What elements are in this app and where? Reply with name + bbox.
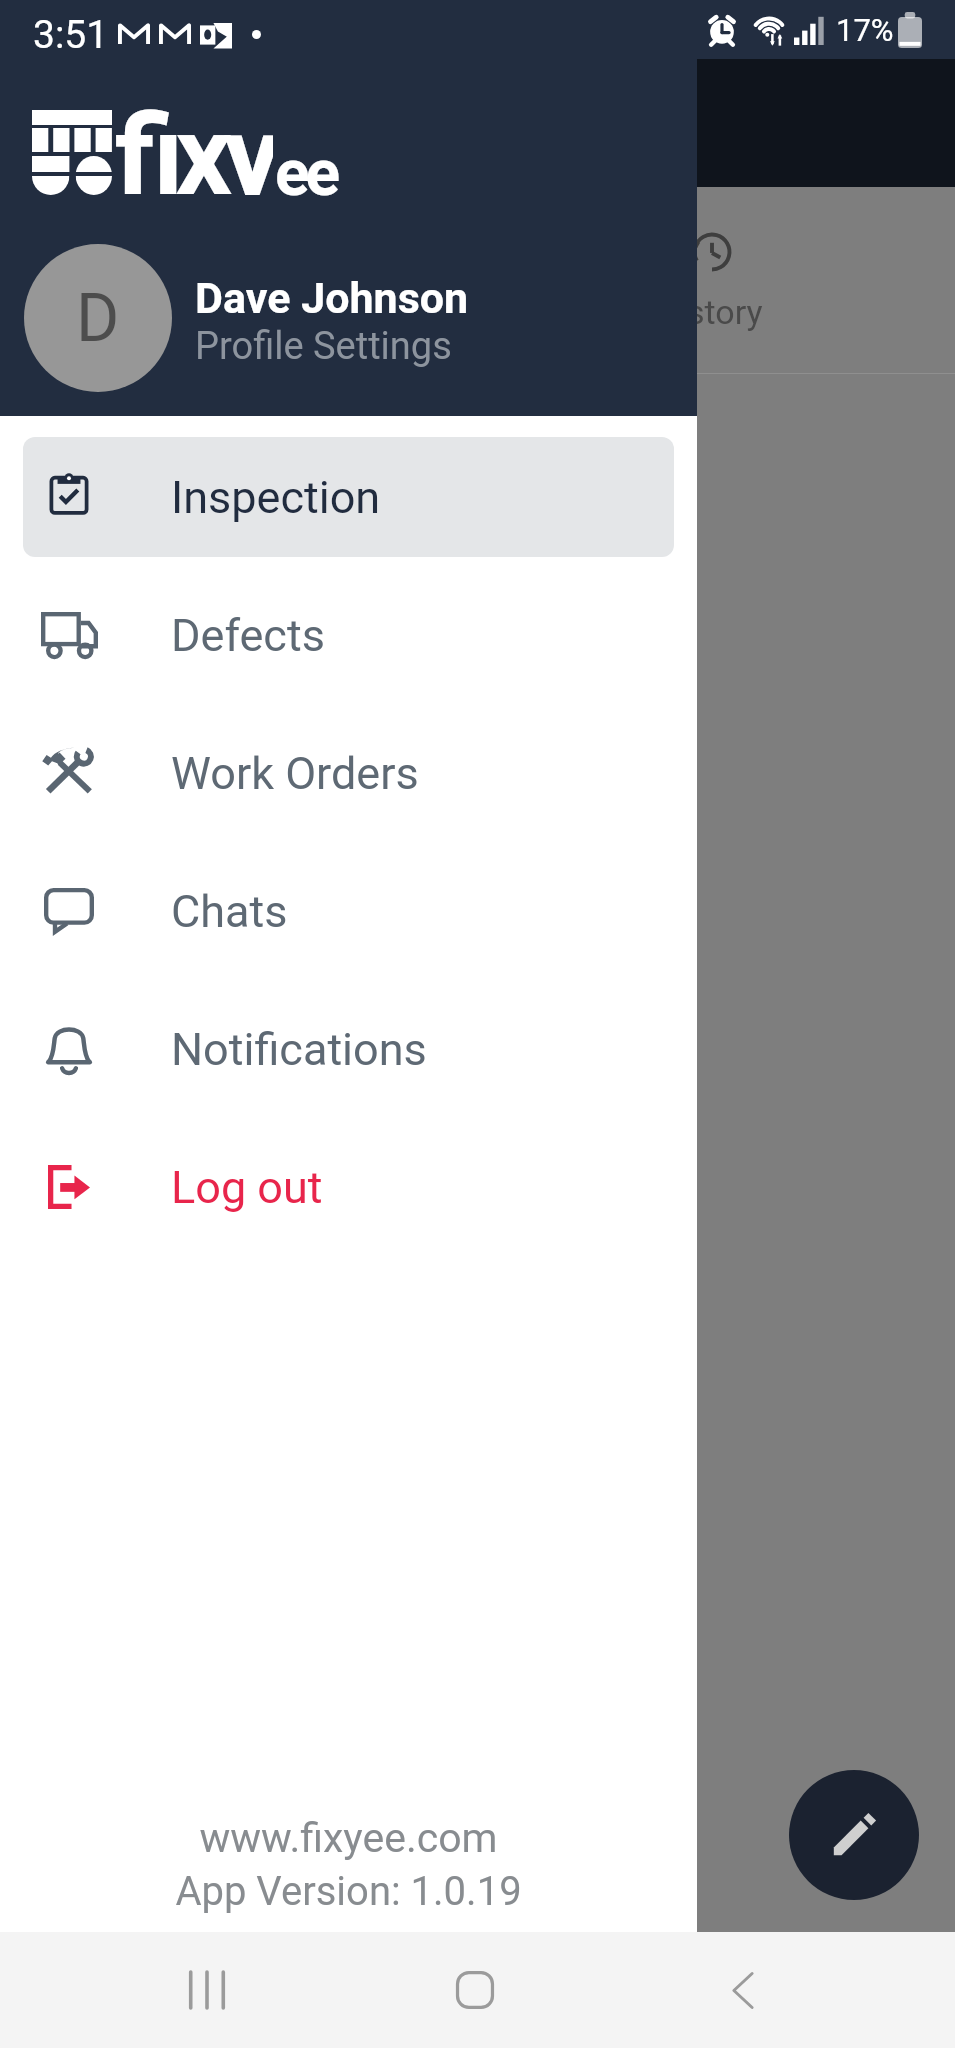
button[interactable]: Inspection [23, 437, 674, 557]
button[interactable]: D [0, 244, 697, 416]
staticText: fixy [115, 90, 273, 195]
staticText: Defects [171, 609, 325, 662]
button[interactable]: Work Orders [23, 713, 674, 833]
staticText: Profile Settings [195, 324, 452, 369]
staticText: www.fixyee.com [199, 1814, 498, 1862]
staticText: Inspection [171, 471, 381, 524]
staticText: Dave Johnson [195, 273, 469, 323]
button[interactable]: Recents [162, 1932, 252, 2048]
staticText: Work Orders [171, 747, 419, 800]
button[interactable]: Notifications [23, 989, 674, 1109]
button[interactable]: Log out [23, 1127, 674, 1247]
staticText: Notifications [171, 1023, 427, 1076]
staticText: App Version: 1.0.19 [175, 1868, 522, 1915]
staticText: Log out [171, 1161, 323, 1214]
button[interactable]: Create [789, 1770, 919, 1900]
button[interactable]: Back [698, 1932, 788, 2048]
staticText: Chats [171, 885, 288, 938]
button[interactable]: Chats [23, 851, 674, 971]
staticText: D [76, 280, 120, 357]
button[interactable]: Home [430, 1932, 520, 2048]
staticText: 3:51 [33, 12, 109, 58]
staticText: 17% [836, 12, 894, 48]
button[interactable]: Defects [23, 575, 674, 695]
staticText: story [687, 292, 763, 332]
staticText: ee [275, 136, 337, 211]
